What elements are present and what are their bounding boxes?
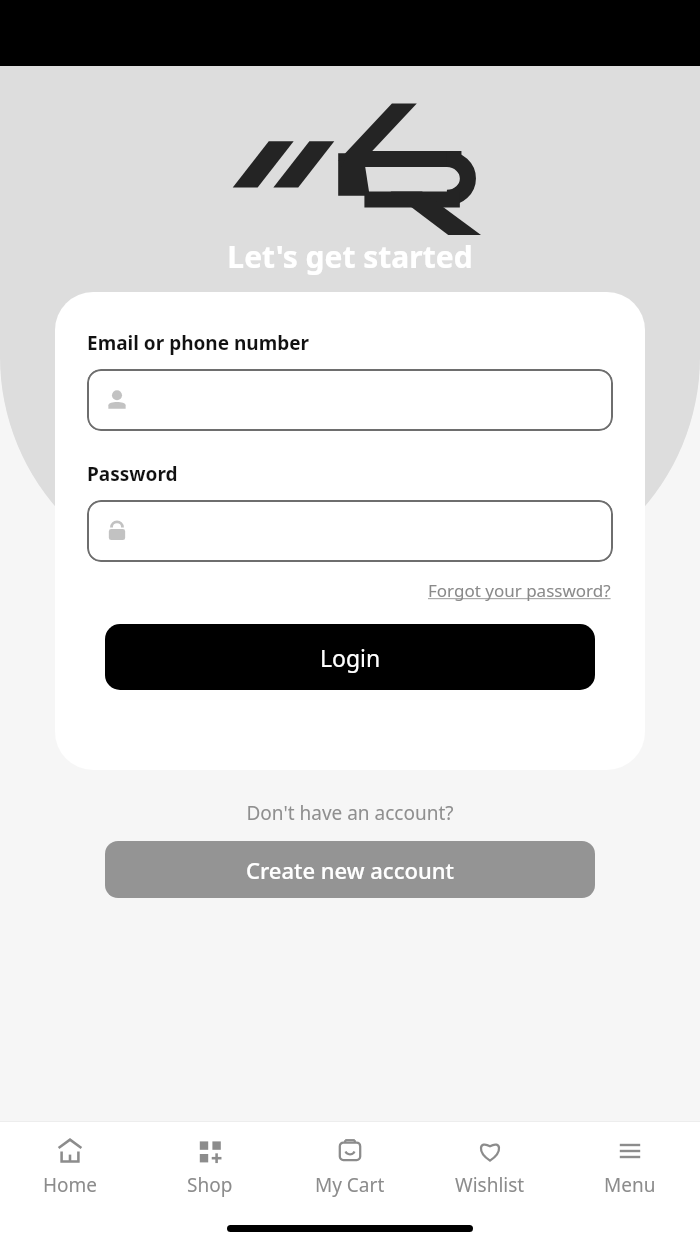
staticText: Forgot your password? [428,579,611,602]
button[interactable]: Wishlist [420,1130,560,1204]
button[interactable]: Email or phone number [87,369,613,431]
staticText: My Cart [315,1172,385,1198]
button[interactable]: Create new account [105,841,595,898]
staticText: Home [43,1172,98,1198]
button[interactable]: Shop [140,1130,280,1204]
button[interactable]: Forgot your password? [426,576,613,605]
staticText: Wishlist [455,1172,525,1198]
staticText: Password [87,461,178,487]
button[interactable]: Menu [560,1130,700,1204]
staticText: Email or phone number [87,330,310,356]
button[interactable]: Password [87,500,613,562]
button[interactable]: Login [105,624,595,690]
staticText: Don't have an account? [246,800,454,826]
button[interactable]: Home [0,1130,140,1204]
staticText: Create new account [246,855,454,885]
staticText: Menu [604,1172,656,1198]
staticText: Login [320,642,381,673]
button[interactable]: My Cart [280,1130,420,1204]
staticText: Let's get started [227,236,473,277]
staticText: Shop [187,1172,233,1198]
